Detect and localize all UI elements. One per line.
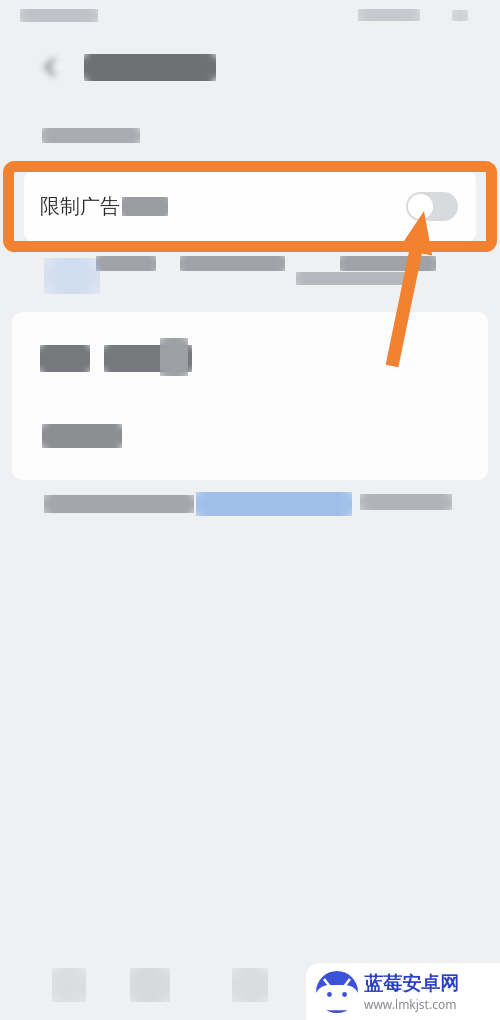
- staticText: 限制广告: [40, 194, 120, 219]
- button[interactable]: 限制广告 switch, off: [406, 192, 476, 221]
- button[interactable]: [12, 312, 488, 480]
- button[interactable]: 限制广告: [24, 170, 476, 242]
- staticText: www.lmkjst.com: [364, 996, 457, 1012]
- button[interactable]: Back: [36, 52, 66, 82]
- staticText: 蓝莓安卓网: [364, 972, 459, 996]
